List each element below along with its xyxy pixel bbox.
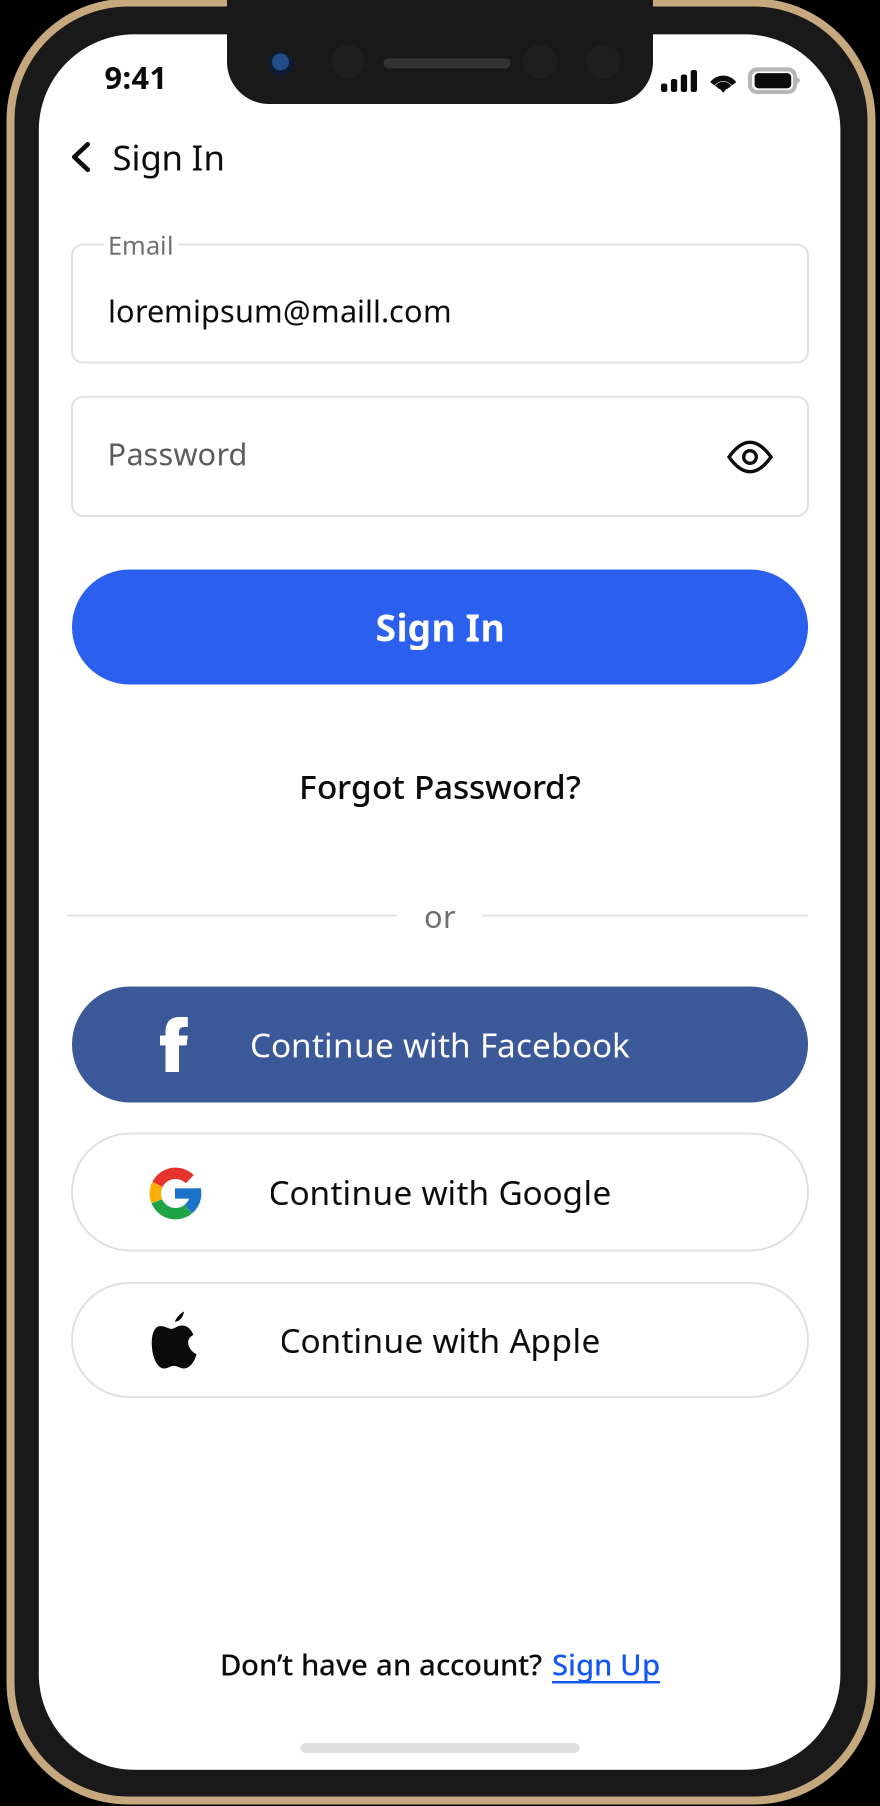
staticText: Sign In	[375, 602, 504, 652]
button[interactable]: Sign In	[72, 127, 262, 187]
staticText: or	[424, 896, 456, 936]
button[interactable]: Sign In	[72, 569, 808, 684]
button[interactable]: Forgot Password?	[240, 756, 640, 816]
button[interactable]: Show password	[715, 422, 785, 492]
staticText: Forgot Password?	[299, 764, 581, 808]
staticText: Continue with Apple	[279, 1318, 600, 1362]
staticText: Sign Up	[552, 1644, 660, 1683]
staticText: Password	[107, 433, 247, 474]
button[interactable]: Continue with Google	[72, 1133, 808, 1250]
staticText: Don’t have an account?	[220, 1644, 542, 1683]
staticText: Email	[108, 228, 174, 262]
staticText: 9:41	[104, 57, 167, 97]
button[interactable]: Continue with Apple	[72, 1283, 808, 1397]
staticText: Sign In	[112, 134, 224, 180]
staticText: Continue with Google	[268, 1170, 611, 1214]
button[interactable]: Continue with Facebook	[72, 986, 808, 1102]
button[interactable]: Sign Up	[552, 1644, 660, 1683]
staticText: loremipsum@maill.com	[108, 290, 452, 331]
staticText: Continue with Facebook	[250, 1022, 630, 1067]
